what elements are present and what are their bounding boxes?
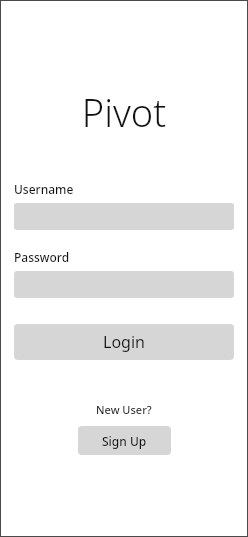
staticText: Sign Up [102, 433, 147, 449]
staticText: Username [14, 181, 74, 197]
staticText: Password [14, 249, 70, 265]
button[interactable]: Login [14, 324, 234, 360]
button[interactable]: Sign Up [78, 426, 171, 455]
staticText: Pivot [14, 86, 234, 138]
staticText: Login [103, 331, 145, 353]
staticText: New User? [96, 402, 152, 417]
